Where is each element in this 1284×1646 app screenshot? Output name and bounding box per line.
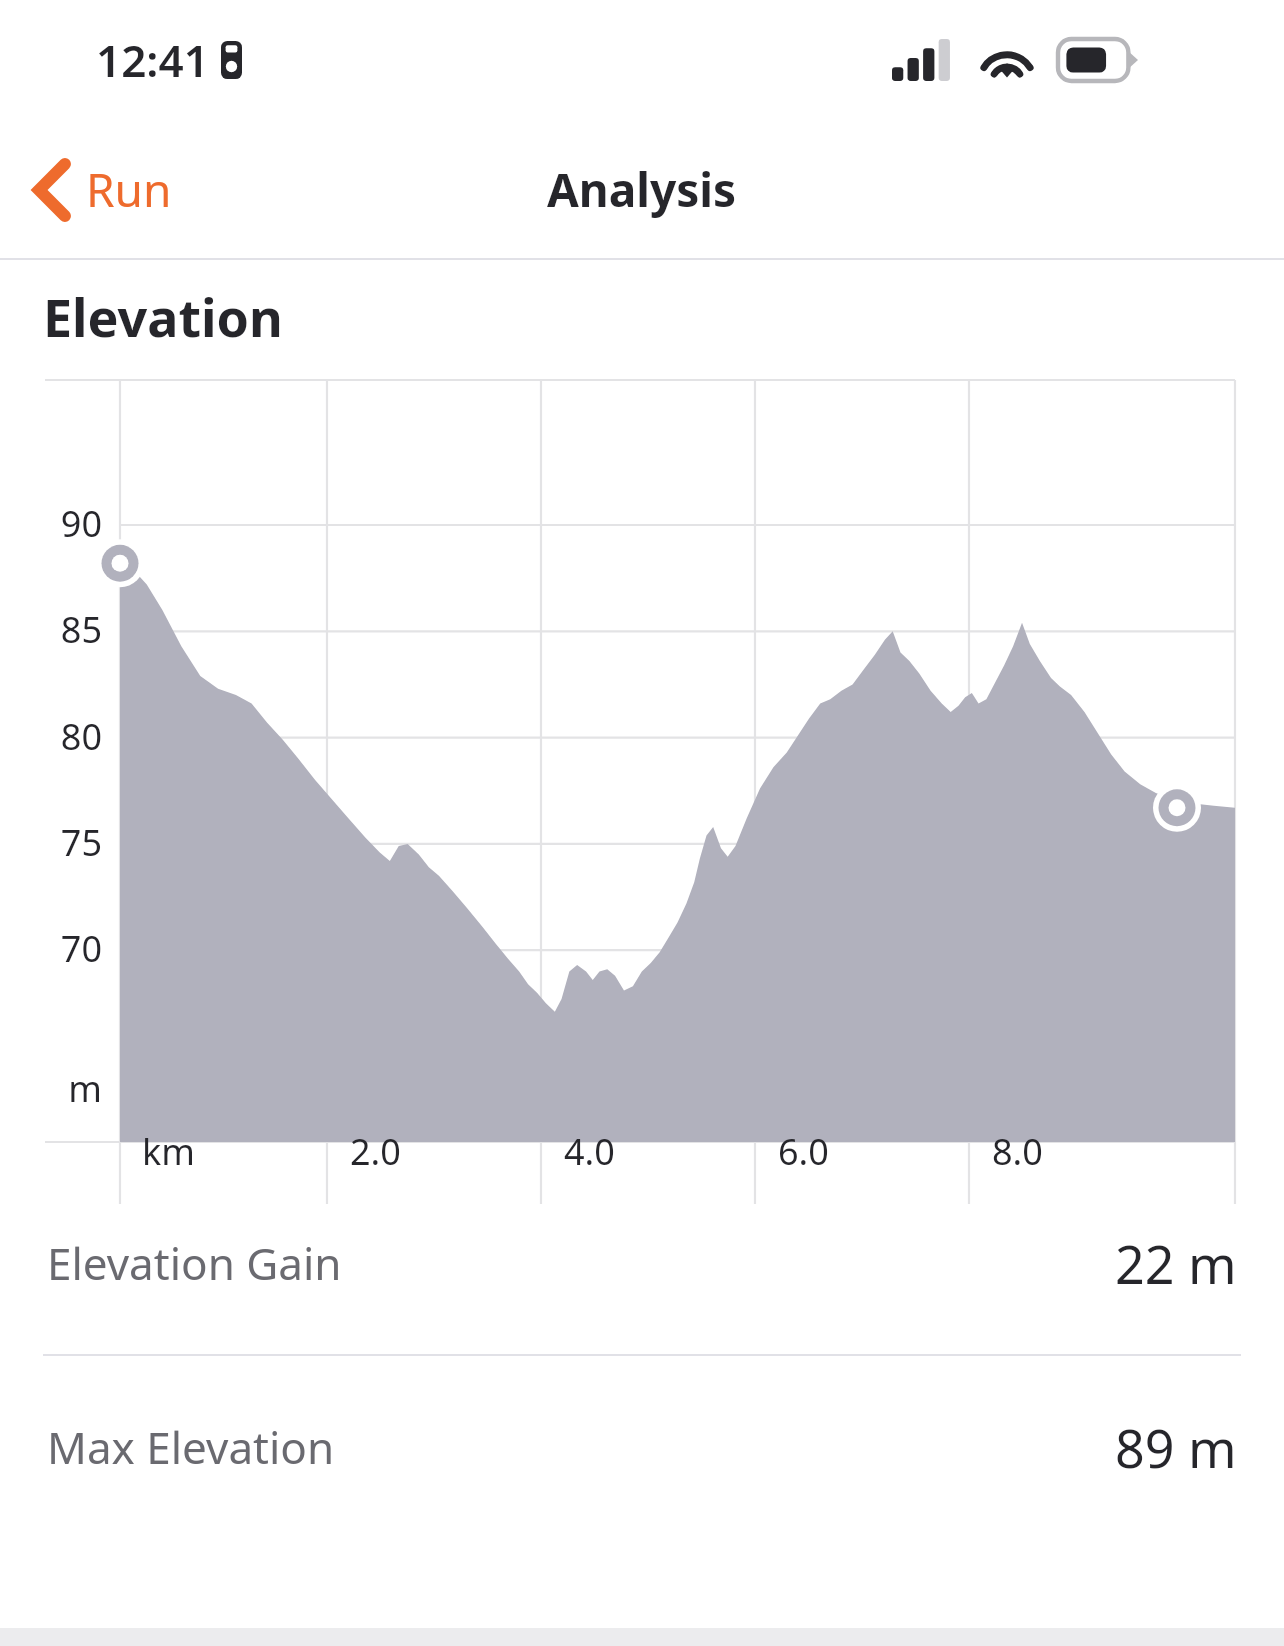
button[interactable]: Elevation Gain	[0, 1172, 1284, 1354]
staticText: Max Elevation	[47, 1417, 335, 1477]
staticText: 2.0	[350, 1127, 401, 1176]
button[interactable]: Max Elevation	[0, 1356, 1284, 1538]
staticText: 4.0	[564, 1127, 615, 1176]
staticText: 8.0	[992, 1127, 1043, 1176]
staticText: 89 m	[1115, 1412, 1237, 1483]
staticText: 90	[0, 499, 102, 548]
staticText: 6.0	[778, 1127, 829, 1176]
staticText: 80	[0, 712, 102, 761]
button[interactable]: Back to Run	[0, 138, 196, 241]
staticText: 22 m	[1115, 1228, 1237, 1299]
staticText: 12:41	[96, 30, 209, 90]
staticText: km	[142, 1127, 195, 1176]
staticText: Run	[86, 158, 172, 221]
staticText: Analysis	[547, 158, 737, 221]
staticText: 85	[0, 605, 102, 654]
staticText: Elevation Gain	[47, 1233, 342, 1293]
staticText: m	[0, 1064, 102, 1113]
staticText: 75	[0, 818, 102, 867]
staticText: 70	[0, 924, 102, 973]
staticText: Elevation	[43, 281, 283, 352]
